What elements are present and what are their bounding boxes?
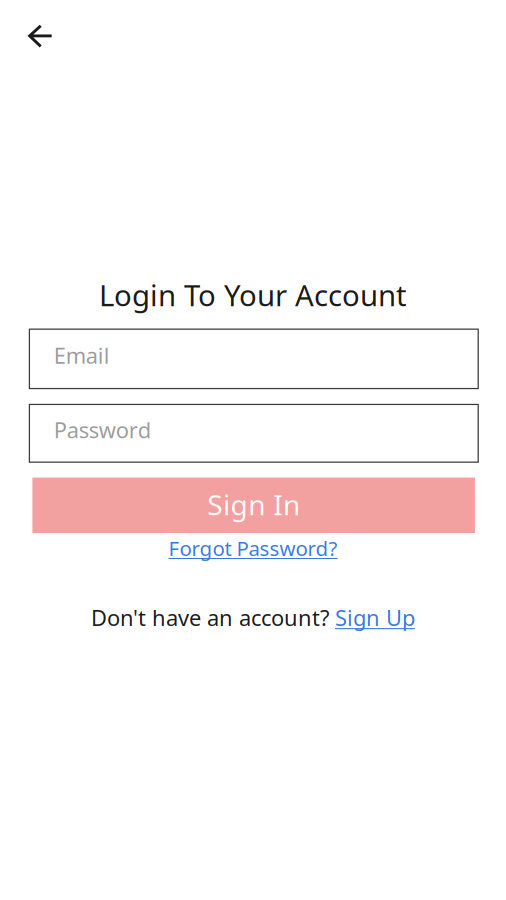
- button[interactable]: Sign Up: [335, 602, 415, 632]
- staticText: Forgot Password?: [168, 534, 337, 562]
- staticText: Email: [54, 340, 110, 370]
- button[interactable]: Back: [0, 0, 67, 61]
- button[interactable]: Sign In: [32, 478, 475, 533]
- button[interactable]: Forgot Password?: [0, 534, 506, 562]
- staticText: Don't have an account?: [91, 602, 335, 632]
- staticText: Sign In: [207, 485, 300, 523]
- staticText: Sign Up: [335, 602, 415, 632]
- staticText: Password: [54, 415, 151, 445]
- staticText: Login To Your Account: [99, 275, 407, 315]
